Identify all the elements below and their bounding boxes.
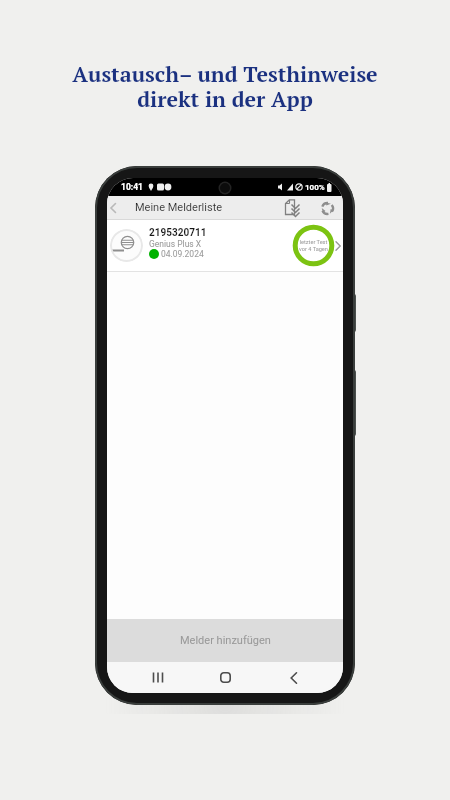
button[interactable]: 2195320711: [107, 220, 343, 271]
staticText: Meine Melderliste: [135, 201, 223, 214]
staticText: Melder hinzufügen: [180, 634, 271, 647]
button[interactable]: [320, 201, 335, 216]
staticText: Austausch– und Testhinweise: [72, 60, 378, 88]
staticText: 100%: [305, 183, 325, 192]
staticText: 10:41: [121, 182, 143, 192]
button[interactable]: [283, 199, 301, 217]
button[interactable]: [290, 672, 298, 684]
staticText: direkt in der App: [137, 85, 313, 113]
button[interactable]: [220, 672, 231, 683]
button[interactable]: Melder hinzufügen: [107, 619, 343, 662]
button[interactable]: [152, 672, 164, 683]
staticText: letzter Test vor 4 Tagen: [299, 239, 328, 253]
staticText: Genius Plus X: [149, 239, 202, 249]
staticText: 2195320711: [149, 227, 207, 239]
staticText: 04.09.2024: [161, 249, 204, 259]
